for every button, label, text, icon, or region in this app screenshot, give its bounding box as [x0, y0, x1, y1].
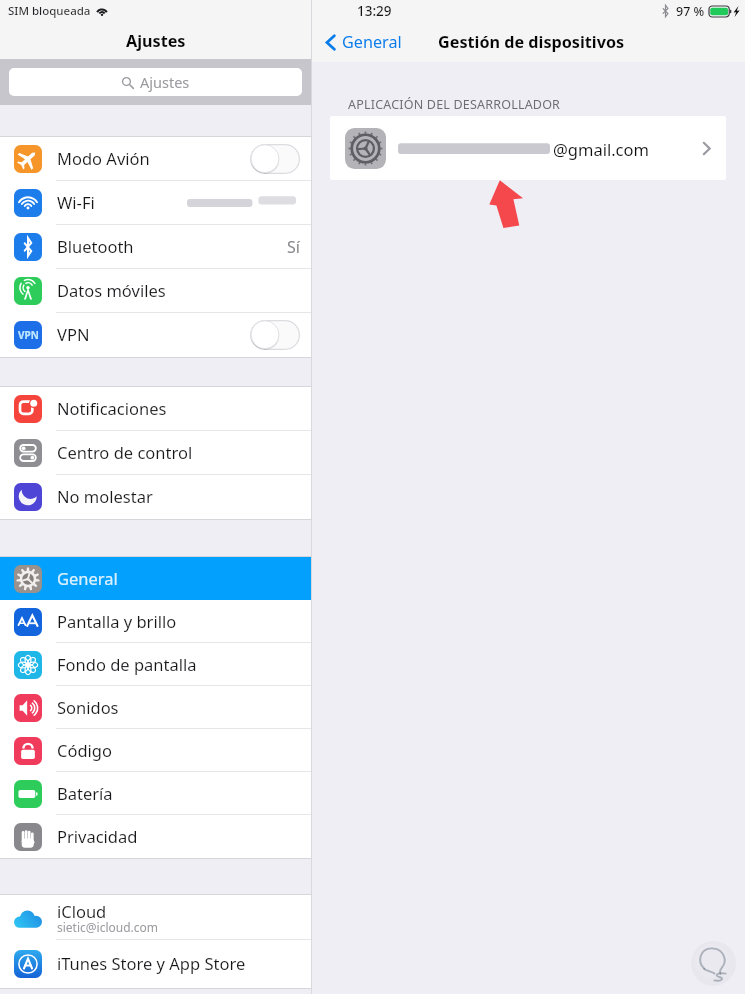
staticText: Bluetooth — [57, 235, 134, 257]
button[interactable]: Activar — [250, 320, 300, 350]
staticText: SIM bloqueada — [8, 3, 91, 19]
button[interactable]: Privacidad — [0, 815, 311, 858]
staticText: iTunes Store y App Store — [57, 952, 246, 974]
staticText: APLICACIÓN DEL DESARROLLADOR — [348, 96, 561, 113]
staticText: Gestión de dispositivos — [438, 31, 625, 53]
staticText: Wi-Fi — [57, 191, 95, 213]
staticText: Código — [57, 739, 112, 761]
staticText: 13:29 — [357, 2, 392, 20]
button[interactable]: Modo Avión — [0, 137, 311, 181]
button[interactable]: Ajustes — [9, 68, 302, 96]
staticText: VPN — [57, 323, 90, 345]
button[interactable]: Notificaciones — [0, 387, 311, 431]
button[interactable]: Código — [0, 729, 311, 772]
staticText: Ajustes — [140, 72, 190, 92]
button[interactable]: Activar — [250, 144, 300, 174]
staticText: Batería — [57, 782, 113, 804]
staticText: 97 % — [676, 3, 705, 20]
button[interactable]: Centro de control — [0, 431, 311, 475]
button[interactable]: Datos móviles — [0, 269, 311, 313]
button[interactable]: Batería — [0, 772, 311, 815]
staticText: Sonidos — [57, 696, 119, 718]
button[interactable]: Sonidos — [0, 686, 311, 729]
staticText: Sí — [287, 236, 300, 258]
button[interactable]: Wi-Fi — [0, 181, 311, 225]
button[interactable]: Pantalla y brillo — [0, 600, 311, 643]
button[interactable]: General — [325, 22, 402, 62]
staticText: Notificaciones — [57, 397, 167, 419]
button[interactable]: No molestar — [0, 475, 311, 519]
staticText: iCloud — [57, 900, 107, 922]
button[interactable]: Fondo de pantalla — [0, 643, 311, 686]
button[interactable]: iCloud — [0, 895, 311, 940]
button[interactable]: VPN — [0, 313, 311, 357]
staticText: VPN — [18, 328, 39, 342]
staticText: Privacidad — [57, 825, 138, 847]
staticText: Datos móviles — [57, 279, 166, 301]
staticText: Fondo de pantalla — [57, 653, 197, 675]
staticText: Ajustes — [126, 30, 186, 52]
staticText: No molestar — [57, 485, 153, 507]
staticText: Modo Avión — [57, 147, 150, 169]
staticText: sietic@icloud.com — [57, 919, 159, 935]
button[interactable]: Bluetooth — [0, 225, 311, 269]
staticText: General — [57, 567, 118, 589]
button[interactable]: General — [0, 557, 311, 600]
button[interactable]: @gmail.com — [330, 116, 726, 180]
staticText: @gmail.com — [553, 138, 649, 160]
staticText: Pantalla y brillo — [57, 610, 177, 632]
staticText: General — [342, 31, 402, 53]
staticText: Centro de control — [57, 441, 193, 463]
button[interactable]: iTunes Store y App Store — [0, 940, 311, 988]
